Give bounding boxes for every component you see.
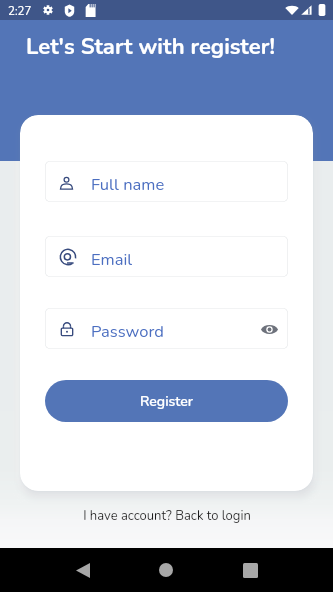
button[interactable]: Password bbox=[45, 308, 288, 349]
button[interactable]: Show password bbox=[259, 319, 279, 339]
staticText: Password bbox=[91, 320, 164, 343]
staticText: Full name bbox=[91, 173, 165, 196]
staticText: Let's Start with register! bbox=[26, 32, 275, 62]
button[interactable]: Register bbox=[45, 380, 288, 422]
staticText: 2:27 bbox=[8, 3, 32, 19]
button[interactable]: Home bbox=[142, 548, 190, 592]
button[interactable]: Recents bbox=[226, 548, 274, 592]
staticText: I have account? Back to login bbox=[83, 507, 251, 525]
button[interactable]: Full name bbox=[45, 161, 288, 202]
staticText: Register bbox=[140, 392, 194, 411]
button[interactable]: Email bbox=[45, 236, 288, 277]
staticText: Email bbox=[91, 248, 133, 271]
button[interactable]: I have account? Back to login bbox=[0, 505, 333, 527]
button[interactable]: Back bbox=[59, 548, 107, 592]
